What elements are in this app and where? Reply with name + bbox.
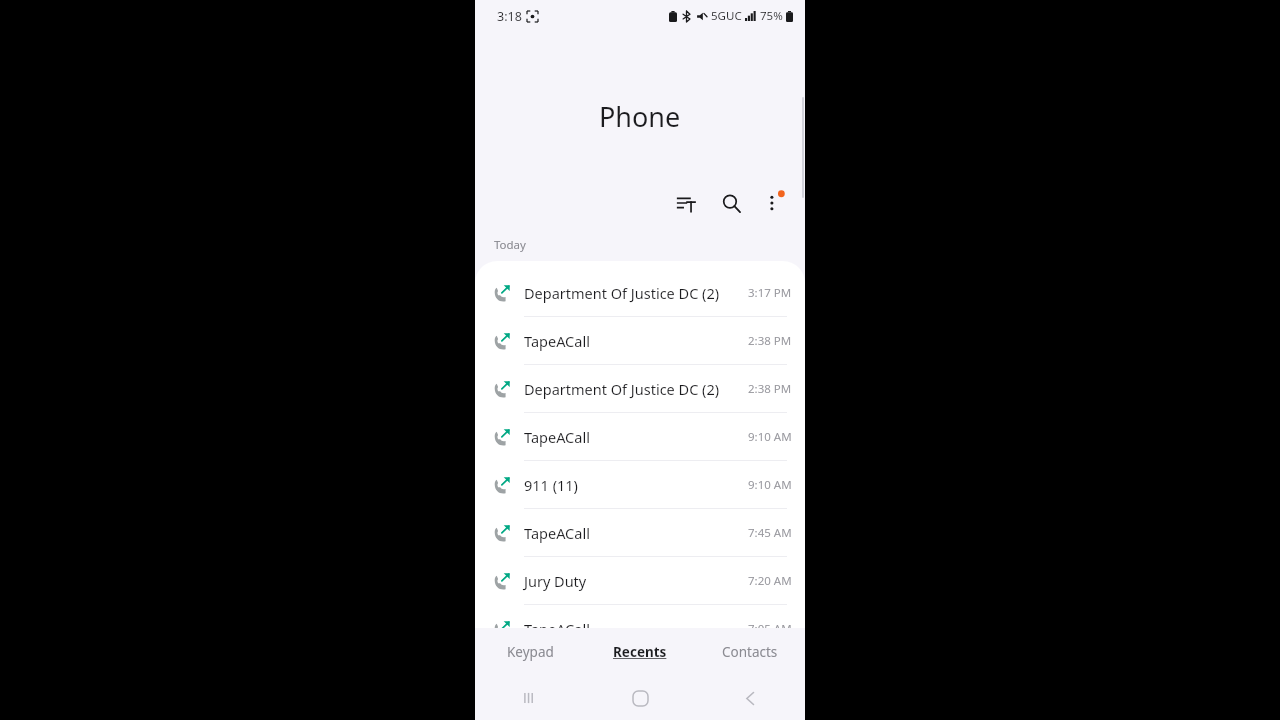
staticText: 2:38 PM [748, 333, 792, 349]
staticText: 3:18 [497, 8, 522, 25]
staticText: Department Of Justice DC (2) [524, 283, 720, 303]
staticText: 7:05 AM [748, 621, 792, 637]
staticText: TapeACall [524, 427, 590, 447]
button[interactable]: Recent apps [475, 676, 585, 720]
staticText: Jury Duty [524, 571, 587, 591]
button[interactable]: TapeACall [475, 605, 805, 653]
button[interactable]: 911 (11) [475, 461, 805, 509]
button[interactable]: TapeACall [475, 509, 805, 557]
button[interactable]: Contacts [695, 628, 805, 676]
button[interactable]: Search [711, 183, 751, 223]
staticText: Keypad [507, 643, 554, 661]
button[interactable]: Department Of Justice DC (2) [475, 365, 805, 413]
staticText: UC [726, 8, 742, 24]
button[interactable]: Home [585, 676, 695, 720]
staticText: 75% [760, 8, 783, 24]
button[interactable]: Jury Duty [475, 557, 805, 605]
staticText: 9:10 AM [748, 477, 792, 493]
button[interactable]: Recents [585, 628, 695, 676]
staticText: TapeACall [524, 619, 590, 639]
button[interactable]: Department Of Justice DC (2) [475, 269, 805, 317]
staticText: 911 (11) [524, 475, 578, 495]
button[interactable]: Back [695, 676, 805, 720]
button[interactable]: More options [753, 183, 793, 223]
staticText: 7:20 AM [748, 573, 792, 589]
staticText: Phone [599, 98, 681, 135]
staticText: Recents [613, 643, 667, 661]
button[interactable]: TapeACall [475, 317, 805, 365]
staticText: TapeACall [524, 523, 590, 543]
button[interactable]: Keypad [475, 628, 585, 676]
staticText: Department Of Justice DC (2) [524, 379, 720, 399]
staticText: 7:45 AM [748, 525, 792, 541]
staticText: 3:17 PM [748, 285, 792, 301]
staticText: 9:10 AM [748, 429, 792, 445]
staticText: Contacts [722, 643, 778, 661]
staticText: 5G [711, 8, 726, 24]
staticText: Today [494, 237, 526, 253]
button[interactable]: TapeACall [475, 413, 805, 461]
button[interactable]: Sort [666, 183, 706, 223]
staticText: 2:38 PM [748, 381, 792, 397]
staticText: TapeACall [524, 331, 590, 351]
